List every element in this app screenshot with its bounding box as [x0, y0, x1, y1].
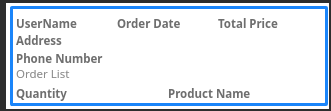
button[interactable]: UserName	[16, 16, 77, 32]
button[interactable]: Resize group	[322, 100, 327, 105]
staticText: Product Name	[168, 86, 251, 102]
staticText: Order List	[16, 66, 70, 82]
button[interactable]: Order List	[16, 66, 70, 82]
button[interactable]: Total Price	[218, 16, 278, 32]
button[interactable]: Address	[16, 33, 62, 49]
staticText: Phone Number	[16, 51, 103, 67]
button[interactable]: Order Date	[117, 16, 181, 32]
button[interactable]: Phone Number	[16, 51, 103, 67]
button[interactable]: UserName	[10, 6, 328, 106]
button[interactable]: Quantity	[16, 86, 67, 102]
staticText: Address	[16, 33, 62, 49]
button[interactable]: Product Name	[168, 86, 251, 102]
staticText: Order Date	[117, 16, 181, 32]
staticText: UserName	[16, 16, 77, 32]
staticText: Total Price	[218, 16, 278, 32]
staticText: Quantity	[16, 86, 67, 102]
